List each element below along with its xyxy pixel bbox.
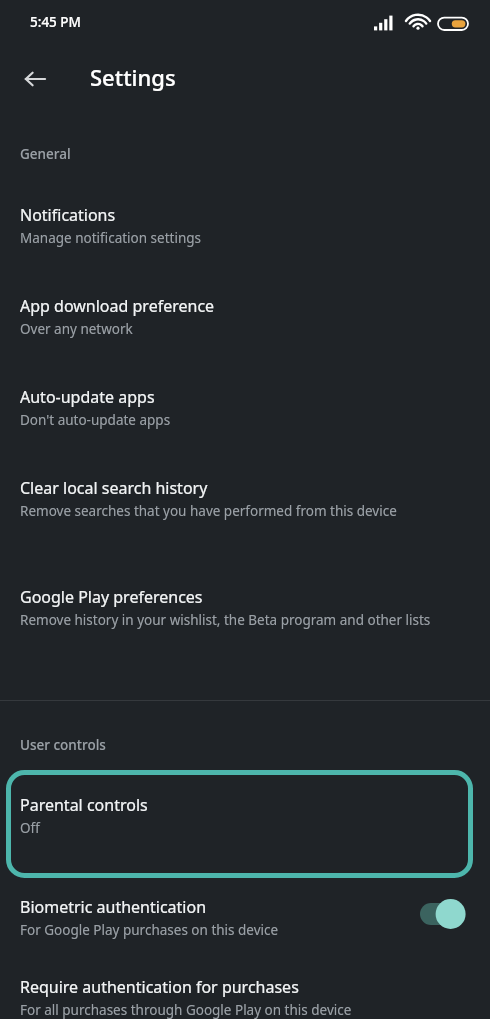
staticText: Parental controls [20, 794, 148, 816]
staticText: Clear local search history [20, 477, 208, 499]
button[interactable]: Parental controls [6, 770, 473, 878]
staticText: Manage notification settings [20, 229, 202, 247]
staticText: 5:45 PM [30, 13, 81, 31]
staticText: Auto-update apps [20, 386, 155, 408]
button[interactable]: Clear local search history [0, 477, 490, 520]
staticText: Remove searches that you have performed … [20, 502, 397, 520]
button[interactable]: Biometric authentication toggle [420, 897, 472, 931]
staticText: Notifications [20, 204, 116, 226]
staticText: General [20, 145, 71, 163]
button[interactable]: Notifications [0, 204, 490, 247]
button[interactable]: Google Play preferences [0, 586, 490, 629]
button[interactable]: App download preference [0, 295, 490, 338]
staticText: Require authentication for purchases [20, 976, 299, 998]
staticText: User controls [20, 736, 106, 754]
staticText: Remove history in your wishlist, the Bet… [20, 611, 431, 629]
staticText: Over any network [20, 320, 133, 338]
staticText: Off [20, 819, 40, 837]
button[interactable]: Auto-update apps [0, 386, 490, 429]
staticText: Biometric authentication [20, 896, 207, 918]
staticText: App download preference [20, 295, 215, 317]
staticText: Google Play preferences [20, 586, 203, 608]
staticText: Don't auto-update apps [20, 411, 171, 429]
staticText: For all purchases through Google Play on… [20, 1001, 352, 1019]
button[interactable]: Require authentication for purchases [0, 976, 490, 1019]
button[interactable]: Back [14, 58, 56, 100]
button[interactable]: Biometric authentication [0, 880, 490, 948]
staticText: For Google Play purchases on this device [20, 921, 279, 939]
staticText: Settings [90, 62, 176, 92]
